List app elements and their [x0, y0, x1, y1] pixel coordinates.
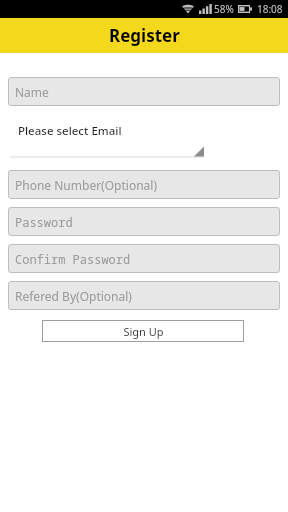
button[interactable]: Password — [8, 207, 280, 236]
button[interactable]: Phone Number(Optional) — [8, 170, 280, 199]
staticText: 18:08 — [257, 2, 283, 16]
button[interactable]: Sign Up — [42, 320, 244, 342]
staticText: Confirm Password — [15, 251, 131, 267]
staticText: Refered By(Optional) — [15, 288, 132, 304]
staticText: Phone Number(Optional) — [15, 177, 157, 193]
button[interactable]: Please select Email — [10, 123, 278, 158]
staticText: 58% — [214, 2, 234, 16]
staticText: Please select Email — [18, 123, 122, 139]
button[interactable]: Refered By(Optional) — [8, 281, 280, 310]
staticText: Sign Up — [123, 324, 164, 339]
staticText: Register — [109, 24, 180, 47]
staticText: Name — [15, 84, 49, 100]
button[interactable]: Name — [8, 77, 280, 106]
staticText: Password — [15, 214, 73, 230]
button[interactable]: Confirm Password — [8, 244, 280, 273]
